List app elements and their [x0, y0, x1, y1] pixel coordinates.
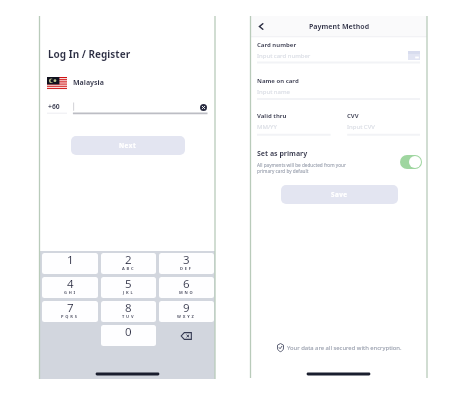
staticText: Card number [257, 41, 297, 49]
staticText: Input card number [257, 52, 311, 60]
button[interactable]: 3 [159, 253, 214, 274]
staticText: TUV [122, 314, 136, 319]
button[interactable]: 7 [42, 301, 98, 322]
staticText: 6 [183, 277, 190, 292]
staticText: CVV [347, 112, 359, 120]
staticText: 2 [125, 253, 132, 268]
staticText: 1 [67, 253, 74, 268]
button[interactable]: 5 [101, 277, 156, 298]
button[interactable]: Back [255, 20, 267, 32]
staticText: ABC [122, 266, 136, 271]
staticText: Your data are all secured with encryptio… [287, 344, 402, 352]
button[interactable]: Backspace [159, 325, 214, 346]
staticText: WXYZ [177, 314, 196, 319]
button[interactable]: 2 [101, 253, 156, 274]
button[interactable]: Next [71, 136, 185, 155]
button[interactable]: Set as primary [400, 155, 422, 169]
staticText: Input name [257, 88, 290, 96]
staticText: 7 [67, 301, 74, 316]
staticText: Set as primary [257, 149, 308, 159]
staticText: MM/YY [257, 123, 277, 131]
staticText: Name on card [257, 77, 299, 85]
staticText: +60 [48, 102, 60, 111]
staticText: GHI [64, 290, 77, 295]
staticText: Payment Method [309, 22, 370, 32]
staticText: Malaysia [73, 78, 104, 88]
staticText: Next [119, 141, 137, 150]
button[interactable]: 9 [159, 301, 214, 322]
staticText: DEF [180, 266, 193, 271]
staticText: All payments will be deducted from your … [257, 162, 346, 174]
button[interactable]: 8 [101, 301, 156, 322]
staticText: Log In / Register [48, 47, 131, 61]
staticText: JKL [123, 290, 135, 295]
staticText: 0 [125, 325, 132, 340]
button[interactable]: 0 [101, 325, 156, 346]
staticText: Input CVV [347, 123, 375, 131]
staticText: MNO [179, 290, 195, 295]
staticText: 9 [183, 301, 190, 316]
button[interactable]: 6 [159, 277, 214, 298]
button[interactable]: Save [281, 185, 398, 204]
staticText: 8 [125, 301, 132, 316]
button[interactable]: 1 [42, 253, 98, 274]
button[interactable]: Clear phone number [200, 104, 207, 111]
staticText: Valid thru [257, 112, 287, 120]
staticText: Save [331, 190, 348, 199]
button[interactable]: 4 [42, 277, 98, 298]
staticText: 4 [67, 277, 74, 292]
staticText: 3 [183, 253, 190, 268]
staticText: PQRS [61, 314, 79, 319]
button[interactable]: Malaysia [47, 76, 104, 90]
staticText: 5 [125, 277, 132, 292]
